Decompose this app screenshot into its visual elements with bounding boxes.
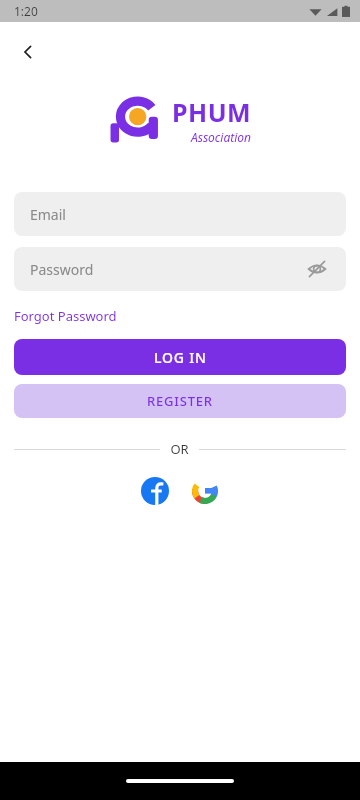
staticText: OR [170, 440, 189, 458]
staticText: 1:20 [14, 3, 38, 19]
button[interactable]: Show password [304, 256, 330, 282]
staticText: Password [30, 260, 94, 279]
button[interactable]: Sign in with Google [188, 474, 222, 508]
staticText: Association [191, 129, 252, 145]
staticText: Forgot Password [14, 307, 117, 325]
staticText: Email [30, 205, 66, 224]
button[interactable]: Email [14, 192, 346, 236]
button[interactable]: REGISTER [14, 384, 346, 418]
button[interactable]: LOG IN [14, 339, 346, 375]
button[interactable]: Password [14, 247, 346, 291]
button[interactable]: Back [6, 30, 50, 74]
staticText: LOG IN [154, 348, 207, 367]
staticText: PHUM [172, 95, 252, 129]
button[interactable]: Forgot Password [14, 305, 117, 327]
button[interactable]: Sign in with Facebook [138, 474, 172, 508]
staticText: REGISTER [147, 392, 213, 410]
